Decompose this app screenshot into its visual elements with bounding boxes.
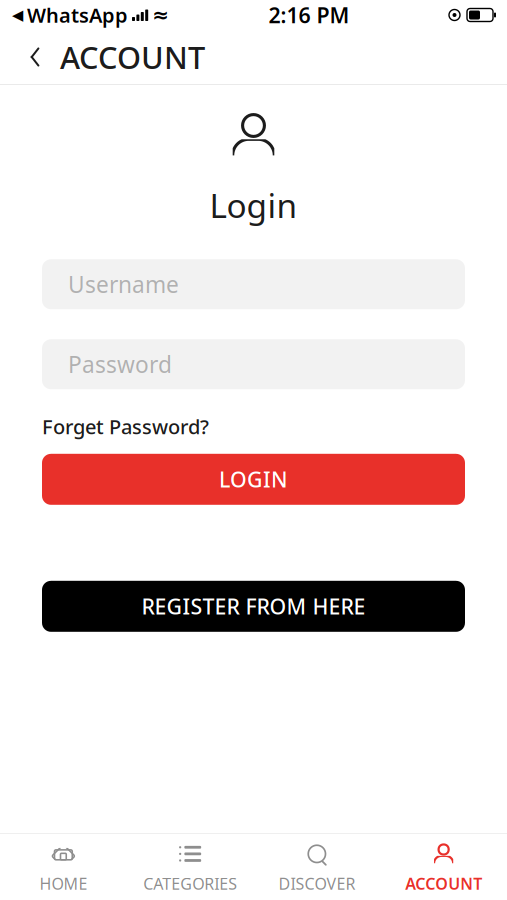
button[interactable]: Forget Password? xyxy=(42,413,209,440)
button[interactable]: Back xyxy=(0,30,60,84)
staticText: HOME xyxy=(39,873,87,894)
staticText: Password xyxy=(68,349,172,379)
staticText: CATEGORIES xyxy=(143,873,237,894)
staticText: ≈ xyxy=(152,4,169,26)
staticText: DISCOVER xyxy=(278,873,355,894)
staticText: Forget Password? xyxy=(42,413,209,440)
button[interactable]: ACCOUNT xyxy=(380,832,507,900)
staticText: Login xyxy=(209,183,297,227)
button[interactable]: HOME xyxy=(0,832,127,900)
button[interactable]: REGISTER FROM HERE xyxy=(42,581,465,632)
staticText: REGISTER FROM HERE xyxy=(141,592,365,620)
button[interactable]: LOGIN xyxy=(42,454,465,505)
staticText: 2:16 PM xyxy=(269,1,350,29)
staticText: ACCOUNT xyxy=(405,873,482,894)
button[interactable]: DISCOVER xyxy=(253,832,380,900)
staticText: WhatsApp xyxy=(27,2,128,28)
staticText: LOGIN xyxy=(219,465,288,493)
button[interactable]: CATEGORIES xyxy=(127,832,254,900)
staticText: ACCOUNT xyxy=(60,37,205,77)
staticText: Username xyxy=(68,269,179,299)
staticText: ◀ xyxy=(12,7,23,23)
